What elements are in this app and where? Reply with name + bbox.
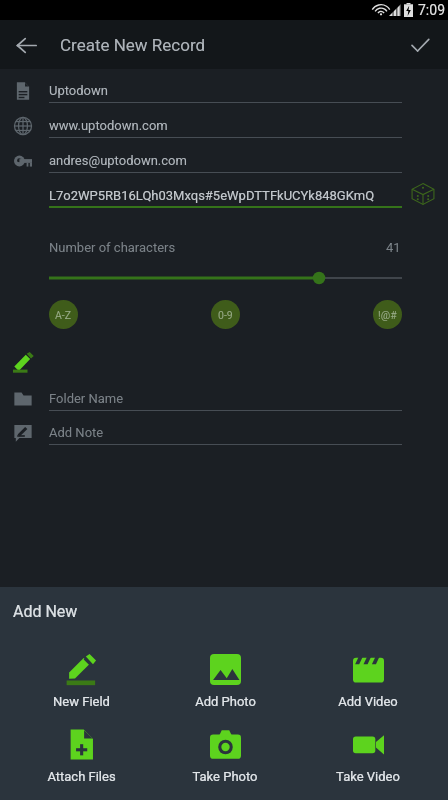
staticText: andres@uptodown.com (49, 153, 187, 168)
staticText: Folder Name (49, 391, 124, 406)
staticText: !@# (378, 309, 397, 321)
staticText: Add Note (49, 425, 104, 440)
button[interactable]: Attach Files (21, 721, 141, 785)
staticText: Number of characters (49, 240, 176, 255)
staticText: 0-9 (218, 309, 233, 321)
button[interactable]: Save (400, 25, 440, 65)
button[interactable]: Edit fields (13, 352, 35, 374)
button[interactable]: Uptodown (0, 74, 448, 108)
staticText: Take Video (336, 769, 400, 784)
button[interactable]: L7o2WP5RB16LQh03Mxqs#5eWpDTTFkUCYk848GKm… (49, 188, 375, 203)
button[interactable]: Generate password (408, 179, 438, 209)
staticText: Create New Record (60, 35, 206, 55)
button[interactable]: New Field (21, 646, 141, 710)
staticText: Add Photo (195, 694, 256, 709)
staticText: Add New (13, 602, 78, 621)
staticText: New Field (53, 694, 110, 709)
button[interactable]: 0-9 (211, 300, 240, 329)
staticText: Attach Files (47, 769, 116, 784)
button[interactable]: Add Video (308, 646, 428, 710)
button[interactable]: !@# (373, 300, 402, 329)
button[interactable]: Take Video (308, 721, 428, 785)
button[interactable]: www.uptodown.com (0, 109, 448, 143)
staticText: Add Video (338, 694, 398, 709)
staticText: 7:09 (418, 2, 445, 18)
staticText: 41 (386, 240, 401, 255)
button[interactable]: A-Z (49, 300, 78, 329)
staticText: www.uptodown.com (49, 118, 168, 133)
staticText: A-Z (55, 309, 72, 321)
button[interactable]: andres@uptodown.com (0, 144, 448, 178)
button[interactable]: Take Photo (165, 721, 285, 785)
button[interactable]: Folder Name (0, 382, 448, 416)
staticText: Take Photo (192, 769, 258, 784)
button[interactable]: Add Photo (165, 646, 285, 710)
button[interactable]: Back (6, 25, 46, 65)
button[interactable]: Password length (41, 268, 410, 288)
staticText: Uptodown (49, 83, 108, 98)
button[interactable]: Add Note (0, 416, 448, 450)
